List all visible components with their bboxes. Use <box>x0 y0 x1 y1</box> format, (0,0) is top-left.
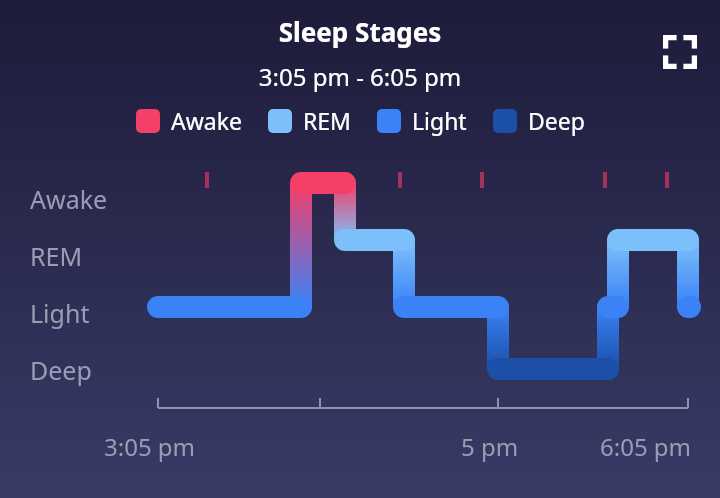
staticText: 3:05 pm <box>104 430 196 463</box>
staticText: Deep <box>528 105 585 136</box>
staticText: 5 pm <box>461 430 519 463</box>
staticText: Awake <box>30 182 108 216</box>
staticText: Sleep Stages <box>0 14 720 49</box>
button[interactable]: Light <box>377 105 467 136</box>
staticText: REM <box>303 105 351 136</box>
staticText: Light <box>30 296 90 330</box>
staticText: Awake <box>171 105 242 136</box>
button[interactable]: REM <box>268 105 351 136</box>
staticText: REM <box>30 239 83 273</box>
button[interactable]: Deep <box>493 105 585 136</box>
staticText: 6:05 pm <box>600 430 692 463</box>
staticText: 3:05 pm - 6:05 pm <box>0 60 720 93</box>
staticText: Light <box>412 105 467 136</box>
staticText: Deep <box>30 353 92 387</box>
button[interactable]: Expand to fullscreen <box>656 28 704 76</box>
button[interactable]: Awake <box>136 105 242 136</box>
button[interactable] <box>0 0 720 498</box>
